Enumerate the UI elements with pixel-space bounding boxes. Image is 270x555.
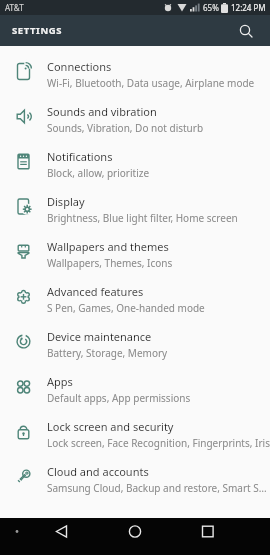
button[interactable]: Apps — [0, 367, 270, 412]
button[interactable]: Display — [0, 187, 270, 232]
staticText: Advanced features — [47, 284, 144, 299]
staticText: Block, allow, prioritize — [47, 166, 150, 180]
staticText: Sounds, Vibration, Do not disturb — [47, 121, 204, 135]
button[interactable]: Device maintenance — [0, 322, 270, 367]
staticText: Device maintenance — [47, 329, 152, 344]
staticText: Cloud and accounts — [47, 464, 149, 479]
button[interactable]: Notifications — [0, 142, 270, 187]
staticText: Lock screen and security — [47, 419, 174, 434]
button[interactable]: Wallpapers and themes — [0, 232, 270, 277]
button[interactable]: Lock screen and security — [0, 412, 270, 457]
staticText: Notifications — [47, 149, 113, 164]
staticText: Apps — [47, 374, 73, 389]
staticText: Sounds and vibration — [47, 104, 157, 119]
button[interactable] — [0, 518, 90, 555]
button[interactable]: Connections — [0, 52, 270, 97]
staticText: SETTINGS — [12, 24, 63, 37]
staticText: Connections — [47, 59, 112, 74]
button[interactable]: Advanced features — [0, 277, 270, 322]
staticText: Display — [47, 194, 85, 209]
staticText: Brightness, Blue light filter, Home scre… — [47, 211, 238, 225]
staticText: Battery, Storage, Memory — [47, 346, 168, 360]
staticText: S Pen, Games, One-handed mode — [47, 301, 205, 315]
staticText: Wi-Fi, Bluetooth, Data usage, Airplane m… — [47, 76, 255, 90]
staticText: Default apps, App permissions — [47, 391, 191, 405]
button[interactable] — [180, 518, 270, 555]
button[interactable]: Sounds and vibration — [0, 97, 270, 142]
button[interactable] — [90, 518, 180, 555]
staticText: AT&T — [5, 2, 24, 13]
staticText: Wallpapers, Themes, Icons — [47, 256, 173, 270]
button[interactable]: Cloud and accounts — [0, 457, 270, 502]
staticText: Lock screen, Face Recognition, Fingerpri… — [47, 436, 270, 450]
staticText: 12:24 PM — [231, 2, 266, 13]
staticText: Wallpapers and themes — [47, 239, 169, 254]
button[interactable] — [234, 19, 258, 43]
staticText: 65% — [203, 2, 219, 13]
staticText: Samsung Cloud, Backup and restore, Smart… — [47, 481, 270, 495]
